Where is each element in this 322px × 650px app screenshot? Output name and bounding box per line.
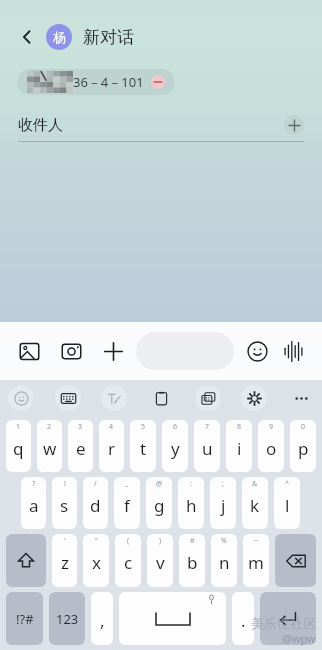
- button[interactable]: ;: [210, 477, 236, 529]
- button[interactable]: %: [211, 534, 237, 587]
- button[interactable]: ): [147, 534, 173, 587]
- staticText: ;: [222, 479, 224, 489]
- staticText: j: [221, 494, 226, 517]
- staticText: _: [125, 479, 129, 489]
- button[interactable]: Gallery: [14, 336, 44, 366]
- staticText: a: [29, 494, 39, 517]
- staticText: !?#: [16, 610, 34, 628]
- staticText: (: [127, 536, 130, 546]
- button[interactable]: Split keyboard: [195, 385, 221, 411]
- staticText: s: [60, 494, 69, 517]
- button[interactable]: Shift: [6, 534, 46, 587]
- button[interactable]: Backspace: [275, 534, 316, 587]
- staticText: l: [285, 494, 290, 517]
- staticText: r: [108, 437, 116, 460]
- button[interactable]: Handwriting: [101, 385, 127, 411]
- button[interactable]: 6: [162, 420, 188, 472]
- staticText: k: [250, 494, 260, 517]
- staticText: %: [221, 536, 227, 546]
- staticText: 36－4－101: [73, 73, 144, 91]
- button[interactable]: 4: [99, 420, 124, 472]
- button[interactable]: 杨: [46, 24, 72, 50]
- button[interactable]: Clipboard: [148, 385, 174, 411]
- staticText: ': [64, 536, 66, 546]
- staticText: 6: [173, 422, 178, 432]
- staticText: t: [140, 437, 147, 460]
- button[interactable]: 1: [6, 420, 31, 472]
- staticText: ?: [32, 479, 36, 489]
- staticText: g: [154, 494, 165, 517]
- button[interactable]: 8: [226, 420, 252, 472]
- staticText: /: [94, 479, 97, 489]
- button[interactable]: 2: [37, 420, 62, 472]
- button[interactable]: 0: [290, 420, 316, 472]
- staticText: ): [159, 536, 162, 546]
- button[interactable]: ~: [243, 534, 269, 587]
- staticText: ^: [285, 479, 290, 489]
- staticText: o: [266, 437, 277, 460]
- staticText: 2: [47, 422, 52, 432]
- button[interactable]: #: [179, 534, 205, 587]
- button[interactable]: .: [232, 592, 254, 645]
- button[interactable]: ^: [274, 477, 300, 529]
- staticText: e: [76, 437, 86, 460]
- staticText: z: [61, 551, 69, 574]
- staticText: f: [124, 494, 130, 517]
- button[interactable]: ?: [21, 477, 46, 529]
- staticText: w: [43, 437, 57, 460]
- button[interactable]: Add: [98, 336, 128, 366]
- button[interactable]: 36－4－101: [17, 69, 175, 95]
- button[interactable]: /: [83, 477, 108, 529]
- button[interactable]: Space: [119, 592, 226, 645]
- button[interactable]: More options: [288, 385, 314, 411]
- staticText: c: [124, 551, 133, 574]
- button[interactable]: _: [114, 477, 140, 529]
- button[interactable]: Camera: [56, 336, 86, 366]
- staticText: p: [298, 437, 309, 460]
- button[interactable]: Voice: [278, 336, 308, 366]
- staticText: 新对话: [83, 27, 134, 48]
- button[interactable]: [136, 332, 234, 370]
- button[interactable]: 3: [68, 420, 93, 472]
- staticText: x: [92, 551, 101, 574]
- staticText: :: [190, 479, 192, 489]
- staticText: 收件人: [18, 116, 63, 135]
- staticText: 0: [301, 422, 306, 432]
- button[interactable]: (: [115, 534, 141, 587]
- button[interactable]: Back: [12, 22, 42, 52]
- button[interactable]: 123: [49, 592, 85, 645]
- button[interactable]: Remove recipient: [151, 75, 165, 89]
- staticText: .: [241, 609, 246, 632]
- button[interactable]: Keyboard layout: [55, 385, 81, 411]
- button[interactable]: !?#: [6, 592, 43, 645]
- button[interactable]: &: [242, 477, 268, 529]
- staticText: 1: [16, 422, 21, 432]
- staticText: n: [219, 551, 230, 574]
- button[interactable]: @: [146, 477, 172, 529]
- staticText: @wpw: [282, 631, 316, 646]
- staticText: @: [156, 479, 163, 489]
- staticText: 美乐世社区: [251, 615, 316, 631]
- button[interactable]: 收件人: [18, 109, 304, 141]
- staticText: 8: [237, 422, 242, 432]
- button[interactable]: !: [52, 477, 77, 529]
- staticText: u: [202, 437, 213, 460]
- button[interactable]: ,: [91, 592, 113, 645]
- button[interactable]: Enter: [260, 592, 316, 645]
- button[interactable]: Emoji: [242, 336, 272, 366]
- staticText: ,: [100, 609, 105, 632]
- button[interactable]: :: [178, 477, 204, 529]
- button[interactable]: 7: [194, 420, 220, 472]
- staticText: 杨: [53, 29, 66, 45]
- staticText: 123: [56, 610, 79, 628]
- staticText: h: [186, 494, 197, 517]
- button[interactable]: ": [83, 534, 109, 587]
- staticText: 3: [78, 422, 83, 432]
- button[interactable]: Emoji keyboard: [8, 385, 34, 411]
- button[interactable]: 5: [130, 420, 156, 472]
- button[interactable]: Settings: [241, 385, 267, 411]
- button[interactable]: ': [52, 534, 77, 587]
- button[interactable]: 9: [258, 420, 284, 472]
- button[interactable]: Add recipient: [284, 115, 304, 135]
- staticText: q: [13, 437, 24, 460]
